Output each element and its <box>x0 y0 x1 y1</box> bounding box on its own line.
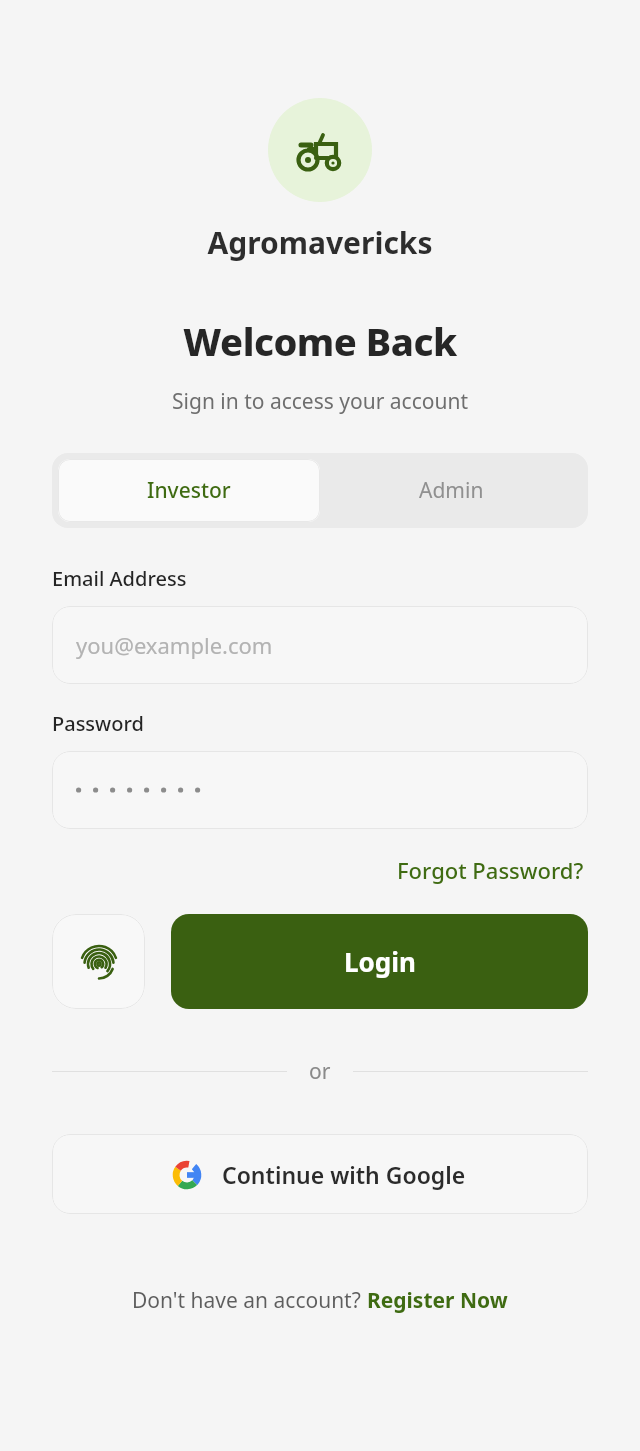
staticText: Don't have an account? <box>132 1286 367 1315</box>
staticText: Sign in to access your account <box>0 387 640 416</box>
button[interactable] <box>52 751 588 829</box>
button[interactable]: Continue with Google <box>52 1134 588 1214</box>
button[interactable]: you@example.com <box>52 606 588 684</box>
button[interactable]: Investor <box>58 459 320 522</box>
staticText: Password <box>52 710 144 737</box>
button[interactable]: Login with fingerprint <box>52 914 145 1009</box>
button[interactable]: Don't have an account? <box>0 1286 640 1315</box>
staticText: Continue with Google <box>222 1159 466 1190</box>
button[interactable]: Login <box>171 914 588 1009</box>
staticText: Login <box>344 944 416 979</box>
staticText: Forgot Password? <box>397 855 584 885</box>
staticText: Investor <box>147 476 231 505</box>
staticText: you@example.com <box>76 630 273 660</box>
staticText: Email Address <box>52 565 187 592</box>
staticText: Admin <box>419 476 484 505</box>
button[interactable]: Admin <box>320 459 582 522</box>
staticText: Register Now <box>367 1286 508 1315</box>
button[interactable]: Forgot Password? <box>393 851 588 889</box>
staticText: or <box>309 1057 331 1086</box>
staticText: Agromavericks <box>0 222 640 263</box>
staticText: Welcome Back <box>0 315 640 367</box>
